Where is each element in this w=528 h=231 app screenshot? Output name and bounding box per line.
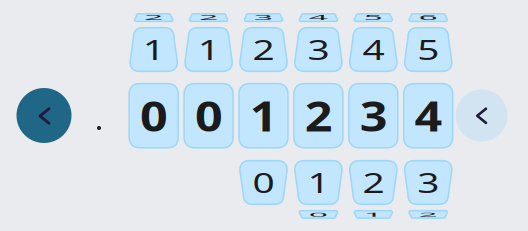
staticText: 2 [199,0,219,41]
staticText: 4 [363,25,384,74]
staticText: 5 [363,0,383,41]
staticText: 3 [418,158,439,207]
staticText: 0 [195,84,222,147]
staticText: 2 [305,84,332,147]
staticText: 1 [308,158,329,207]
staticText: 0 [253,158,274,207]
button[interactable]: Previous [455,89,507,141]
staticText: 1 [363,191,383,231]
staticText: 1 [198,25,219,74]
staticText: 1 [250,84,277,147]
staticText: 4 [308,0,328,41]
button[interactable]: Back [16,88,71,143]
staticText: 5 [418,25,439,74]
staticText: 2 [253,25,274,74]
staticText: 3 [360,84,387,147]
staticText: 2 [363,158,384,207]
staticText: 0 [140,84,167,147]
staticText: 3 [253,0,273,41]
staticText: 4 [415,84,442,147]
staticText: 2 [418,191,438,231]
staticText: 1 [143,25,164,74]
staticText: 6 [418,0,438,41]
staticText: 2 [144,0,164,41]
staticText: 3 [308,25,329,74]
staticText: 0 [308,191,328,231]
